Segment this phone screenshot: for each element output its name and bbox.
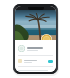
button[interactable]: Award badge (41, 34, 52, 45)
button[interactable] (18, 45, 53, 52)
button[interactable]: Book now (18, 59, 53, 63)
button[interactable]: Book now (48, 60, 53, 63)
button[interactable]: Award badge (13, 4, 58, 74)
